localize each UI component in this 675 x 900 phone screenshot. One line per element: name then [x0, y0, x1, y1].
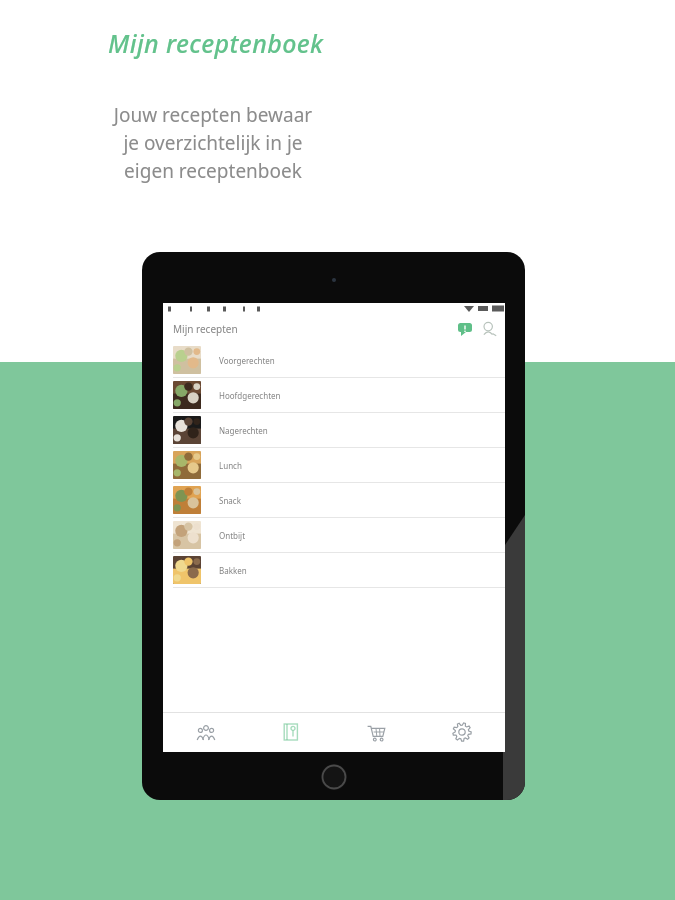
button[interactable]: Mijn recepten: [248, 712, 333, 752]
staticText: Hoofdgerechten: [219, 390, 281, 401]
staticText: Jouw recepten bewaar je overzichtelijk i…: [68, 102, 358, 184]
button[interactable]: Groepen: [163, 712, 248, 752]
staticText: Mijn receptenboek: [108, 26, 324, 60]
button[interactable]: Lunch: [163, 448, 505, 482]
staticText: Bakken: [219, 565, 247, 576]
staticText: Mijn recepten: [173, 322, 238, 336]
button[interactable]: Boodschappen: [333, 712, 419, 752]
staticText: Nagerechten: [219, 425, 268, 436]
staticText: Ontbijt: [219, 530, 246, 541]
button[interactable]: Berichten: [457, 322, 473, 336]
button[interactable]: Instellingen: [419, 712, 505, 752]
button[interactable]: Hoofdgerechten: [163, 378, 505, 412]
button[interactable]: Nagerechten: [163, 413, 505, 447]
button[interactable]: Snack: [163, 483, 505, 517]
button[interactable]: Bakken: [163, 553, 505, 587]
staticText: Lunch: [219, 460, 242, 471]
button[interactable]: Profiel: [481, 321, 497, 337]
button[interactable]: Voorgerechten: [163, 343, 505, 377]
staticText: Snack: [219, 495, 241, 506]
staticText: Voorgerechten: [219, 355, 275, 366]
button[interactable]: Ontbijt: [163, 518, 505, 552]
